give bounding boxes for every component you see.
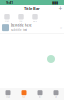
button[interactable]: Disc — [32, 90, 48, 98]
staticText: ▮▮▮ — [52, 0, 58, 5]
staticText: + — [58, 4, 62, 13]
staticText: Pay — [19, 20, 22, 22]
button[interactable]: Pay — [16, 90, 32, 98]
staticText: Pay — [22, 96, 25, 98]
button[interactable]: Compose — [47, 55, 55, 63]
button[interactable]: Scan — [0, 14, 14, 22]
staticText: Disc — [38, 96, 41, 98]
staticText: > — [60, 25, 62, 30]
button[interactable]: Me — [48, 90, 64, 98]
staticText: Item title here — [11, 24, 32, 27]
staticText: Me — [55, 96, 57, 98]
staticText: More — [33, 20, 37, 22]
staticText: Chats — [6, 96, 10, 98]
button[interactable]: Add — [57, 5, 64, 12]
button[interactable]: Pay — [14, 14, 28, 22]
staticText: 9:41 — [6, 0, 13, 5]
button[interactable]: Item title here — [0, 22, 64, 33]
staticText: Scan — [5, 20, 9, 22]
staticText: subtitle text — [11, 28, 27, 32]
button[interactable]: More — [28, 14, 42, 22]
staticText: Title Bar — [24, 6, 40, 11]
button[interactable]: Chats — [0, 90, 16, 98]
